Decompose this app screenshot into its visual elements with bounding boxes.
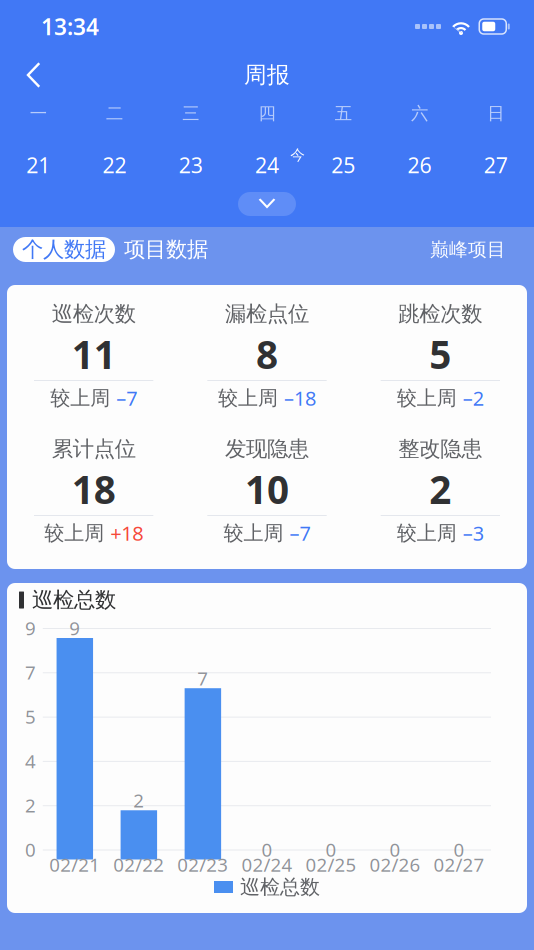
staticText: 累计点位 xyxy=(52,436,136,462)
staticText: 四 xyxy=(258,103,275,124)
staticText: 周报 xyxy=(244,61,290,89)
staticText: 六 xyxy=(411,103,428,124)
staticText: 整改隐患 xyxy=(398,436,482,462)
staticText: 较上周 xyxy=(44,521,104,545)
staticText: 23 xyxy=(179,151,203,179)
staticText: 五 xyxy=(335,103,352,124)
button[interactable]: 23 xyxy=(153,130,229,182)
staticText: 5 xyxy=(25,704,36,729)
staticText: 7 xyxy=(25,660,36,685)
staticText: 巡检总数 xyxy=(240,875,320,899)
staticText: 02/25 xyxy=(305,852,356,877)
staticText: 02/27 xyxy=(433,852,484,877)
staticText: +18 xyxy=(110,520,143,546)
staticText: 较上周 xyxy=(223,521,283,545)
staticText: 02/24 xyxy=(241,852,292,877)
staticText: 8 xyxy=(256,328,278,380)
staticText: 21 xyxy=(26,151,50,179)
button[interactable]: 26 xyxy=(381,130,458,182)
staticText: 今 xyxy=(290,146,305,164)
button[interactable]: Expand calendar xyxy=(238,192,296,216)
button[interactable]: 24 xyxy=(229,130,305,182)
staticText: 02/23 xyxy=(177,852,228,877)
staticText: 巡检次数 xyxy=(52,301,136,327)
staticText: 二 xyxy=(106,103,123,124)
button[interactable]: Back xyxy=(0,54,58,96)
button[interactable]: 22 xyxy=(76,130,153,182)
button[interactable]: 个人数据 xyxy=(13,237,115,262)
staticText: 0 xyxy=(325,837,336,862)
staticText: 较上周 xyxy=(50,386,110,410)
staticText: 2 xyxy=(429,463,451,515)
staticText: 漏检点位 xyxy=(225,301,309,327)
staticText: –7 xyxy=(289,520,310,546)
staticText: 0 xyxy=(453,837,464,862)
staticText: 跳检次数 xyxy=(398,301,482,327)
button[interactable]: 27 xyxy=(458,130,534,182)
staticText: 11 xyxy=(72,328,116,380)
staticText: 日 xyxy=(487,103,504,124)
staticText: 0 xyxy=(25,837,36,862)
staticText: 9 xyxy=(69,616,80,640)
staticText: 02/21 xyxy=(49,852,100,877)
staticText: 27 xyxy=(484,151,508,179)
staticText: 巡检总数 xyxy=(32,587,116,613)
staticText: 25 xyxy=(331,151,355,179)
staticText: 4 xyxy=(25,748,36,773)
button[interactable]: 25 xyxy=(305,130,381,182)
staticText: 三 xyxy=(182,103,199,124)
staticText: 02/22 xyxy=(113,852,164,877)
staticText: 02/26 xyxy=(369,852,420,877)
staticText: –7 xyxy=(116,385,137,411)
staticText: 5 xyxy=(429,328,451,380)
staticText: 10 xyxy=(245,463,289,515)
staticText: 0 xyxy=(261,837,272,862)
button[interactable]: 巅峰项目 xyxy=(430,236,506,263)
staticText: 2 xyxy=(133,788,144,813)
staticText: 22 xyxy=(102,151,126,179)
staticText: 个人数据 xyxy=(22,236,106,263)
button[interactable]: 项目数据 xyxy=(115,237,217,262)
staticText: 7 xyxy=(197,666,208,691)
staticText: 项目数据 xyxy=(124,236,208,263)
staticText: 2 xyxy=(25,793,36,818)
staticText: 9 xyxy=(25,616,36,640)
staticText: 24 xyxy=(255,151,279,179)
staticText: 发现隐患 xyxy=(225,436,309,462)
staticText: 0 xyxy=(389,837,400,862)
staticText: 13:34 xyxy=(41,11,99,41)
staticText: 一 xyxy=(30,103,47,124)
staticText: 18 xyxy=(72,463,116,515)
staticText: –2 xyxy=(463,385,484,411)
staticText: 较上周 xyxy=(397,386,457,410)
staticText: 巅峰项目 xyxy=(430,238,506,261)
staticText: –18 xyxy=(284,385,316,411)
staticText: 较上周 xyxy=(397,521,457,545)
button[interactable]: 21 xyxy=(0,130,76,182)
staticText: 较上周 xyxy=(218,386,278,410)
staticText: 26 xyxy=(408,151,432,179)
staticText: –3 xyxy=(463,520,484,546)
